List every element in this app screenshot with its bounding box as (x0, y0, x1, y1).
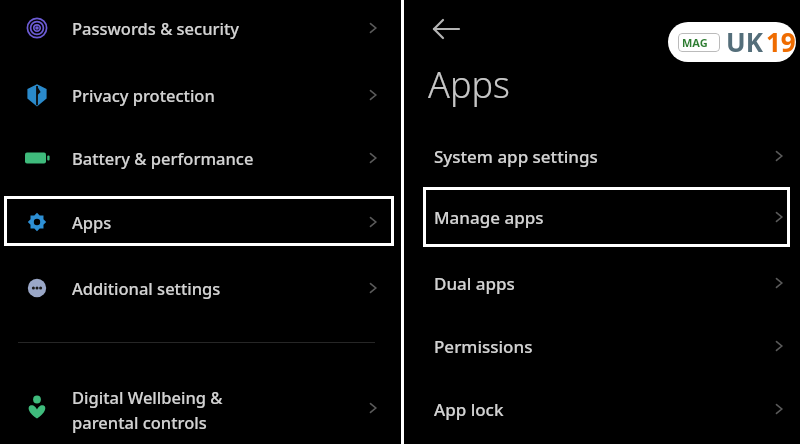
button[interactable]: System app settings (404, 130, 800, 182)
button[interactable]: Apps (0, 196, 400, 248)
staticText: Digital Wellbeing & parental controls (72, 386, 223, 433)
staticText: Apps (428, 60, 510, 109)
staticText: System app settings (434, 145, 598, 168)
staticText: Battery & performance (72, 147, 254, 169)
button[interactable]: Dual apps (404, 257, 800, 309)
button[interactable]: Back (424, 6, 470, 52)
staticText: UK (726, 24, 763, 59)
staticText: MAG (682, 35, 708, 50)
button[interactable]: Privacy protection (0, 69, 400, 121)
button[interactable]: App lock (404, 383, 800, 435)
staticText: Apps (72, 211, 112, 233)
staticText: Privacy protection (72, 84, 215, 106)
staticText: Dual apps (434, 272, 515, 295)
staticText: Permissions (434, 335, 533, 358)
button[interactable]: Passwords & security (0, 2, 400, 54)
button[interactable]: Battery & performance (0, 132, 400, 184)
staticText: Additional settings (72, 277, 221, 299)
button[interactable]: Additional settings (0, 262, 400, 314)
button[interactable]: Permissions (404, 320, 800, 372)
button[interactable]: Manage apps (404, 191, 800, 243)
button[interactable]: Digital Wellbeing & parental controls (0, 370, 400, 444)
staticText: Manage apps (434, 206, 544, 229)
staticText: App lock (434, 398, 504, 421)
staticText: Passwords & security (72, 17, 239, 39)
staticText: 19 (766, 24, 796, 59)
